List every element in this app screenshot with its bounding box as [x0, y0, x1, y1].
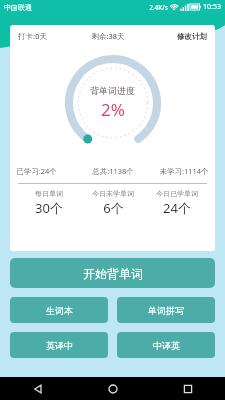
staticText: 已学习:24个	[16, 166, 57, 176]
staticText: 总共:1138个	[92, 166, 134, 176]
staticText: 剩余:38天	[91, 31, 125, 41]
staticText: 2%	[101, 98, 125, 121]
staticText: 英译中	[46, 340, 73, 351]
button[interactable]: 中译英	[117, 332, 215, 358]
staticText: 每日单词	[35, 189, 63, 198]
button[interactable]: Home	[75, 377, 150, 400]
staticText: 修改计划	[177, 32, 207, 41]
staticText: 打卡:0天	[18, 31, 47, 41]
button[interactable]: 开始背单词	[10, 258, 215, 288]
staticText: 10:53	[203, 2, 221, 12]
staticText: 今日未学单词	[92, 189, 134, 198]
staticText: 背单词进度	[90, 85, 135, 96]
staticText: 未学习:1114个	[159, 166, 209, 176]
staticText: 中国联通	[4, 3, 32, 12]
button[interactable]: 英译中	[10, 332, 108, 358]
button[interactable]: 生词本	[10, 297, 108, 323]
staticText: 6个	[103, 199, 124, 217]
button[interactable]: 单词拼写	[117, 297, 215, 323]
staticText: 24个	[163, 199, 191, 217]
staticText: 开始背单词	[83, 266, 143, 281]
staticText: 30个	[35, 199, 63, 217]
staticText: 单词拼写	[148, 305, 184, 316]
staticText: 生词本	[46, 305, 73, 316]
staticText: 中译英	[153, 340, 180, 351]
staticText: 2.4K/s	[149, 3, 168, 12]
button[interactable]: Back	[0, 377, 75, 400]
staticText: 今日已学单词	[156, 189, 198, 198]
button[interactable]: Recent apps	[150, 377, 225, 400]
button[interactable]: 修改计划	[177, 32, 207, 41]
